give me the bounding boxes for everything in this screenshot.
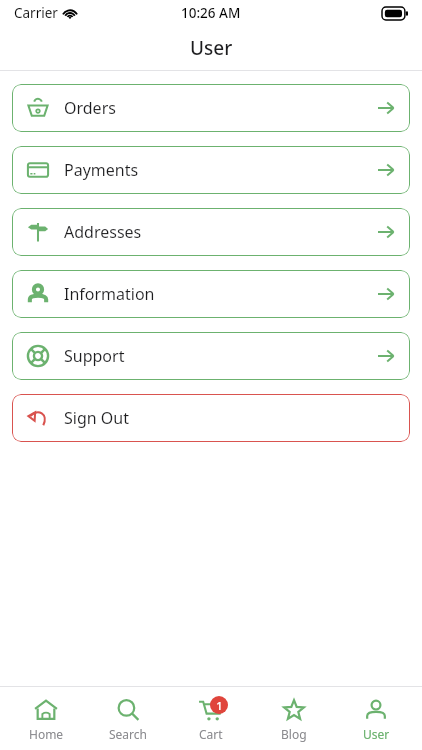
staticText: Carrier [14, 4, 58, 22]
staticText: 1 [216, 698, 223, 713]
button[interactable]: Addresses [12, 208, 410, 256]
button[interactable]: User [339, 696, 413, 742]
staticText: Home [29, 726, 64, 742]
button[interactable]: Cart [174, 696, 248, 742]
staticText: Information [64, 283, 155, 305]
staticText: Blog [281, 726, 307, 742]
button[interactable]: Payments [12, 146, 410, 194]
button[interactable]: Sign Out [12, 394, 410, 442]
staticText: Search [109, 726, 147, 742]
staticText: Addresses [64, 221, 142, 243]
staticText: Payments [64, 159, 139, 181]
button[interactable]: Orders [12, 84, 410, 132]
staticText: Cart [199, 726, 223, 742]
button[interactable]: Blog [257, 696, 331, 742]
staticText: Support [64, 345, 125, 367]
button[interactable]: Home [9, 696, 83, 742]
staticText: User [190, 35, 233, 61]
button[interactable]: Search [91, 696, 165, 742]
staticText: Sign Out [64, 407, 129, 429]
staticText: User [363, 726, 390, 742]
button[interactable]: Information [12, 270, 410, 318]
staticText: Orders [64, 97, 116, 119]
button[interactable]: Support [12, 332, 410, 380]
staticText: 10:26 AM [181, 4, 241, 22]
